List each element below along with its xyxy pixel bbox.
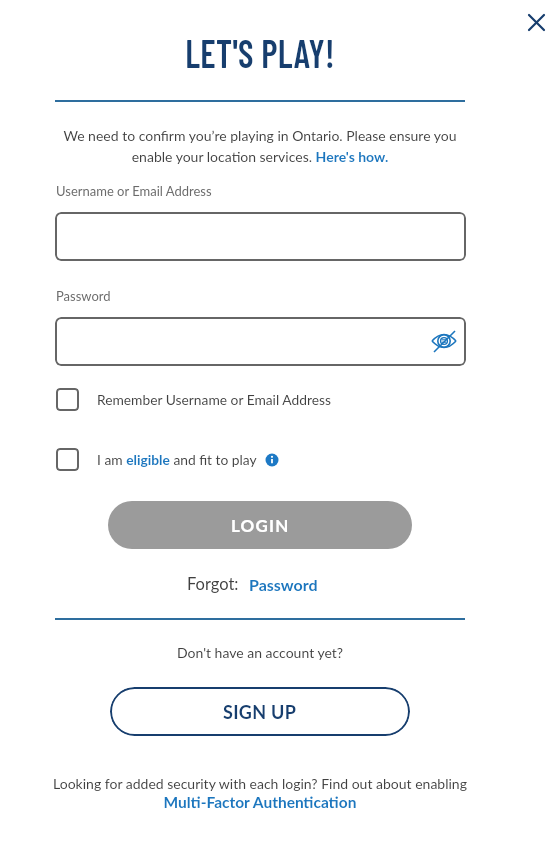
staticText: Remember Username or Email Address: [97, 391, 331, 408]
staticText: Username or Email Address: [56, 183, 212, 199]
button[interactable]: [55, 212, 466, 261]
staticText: LOGIN: [231, 515, 290, 535]
button[interactable]: Remember Username or Email Address: [56, 388, 331, 411]
button[interactable]: LOGIN: [108, 501, 412, 549]
button[interactable]: [519, 5, 553, 39]
button[interactable]: [55, 317, 466, 366]
button[interactable]: SIGN UP: [110, 687, 410, 736]
staticText: Password: [56, 288, 111, 304]
staticText: Don't have an account yet?: [177, 644, 344, 661]
button[interactable]: [430, 327, 458, 355]
staticText: SIGN UP: [223, 701, 297, 723]
staticText: I am eligible and fit to play: [97, 451, 257, 468]
button[interactable]: We need to confirm you’re playing in Ont…: [55, 127, 465, 165]
button[interactable]: Password: [249, 575, 318, 594]
staticText: Forgot:: [187, 574, 239, 594]
button[interactable]: I am eligible and fit to play: [56, 448, 279, 471]
button[interactable]: Looking for added security with each log…: [25, 775, 495, 811]
staticText: LET'S PLAY!: [185, 28, 336, 75]
